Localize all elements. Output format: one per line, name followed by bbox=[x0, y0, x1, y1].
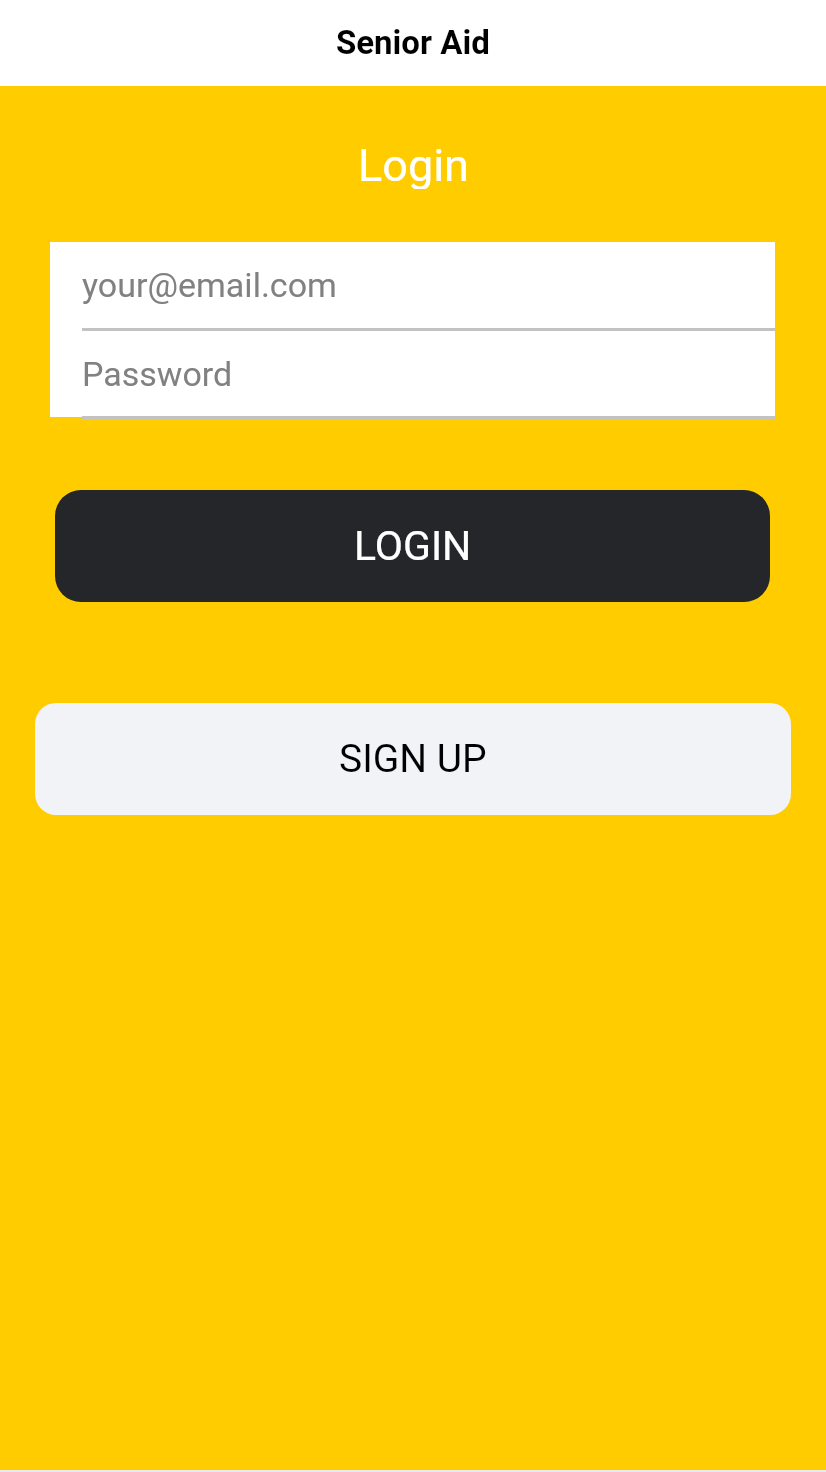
button[interactable]: SIGN UP bbox=[35, 703, 791, 815]
staticText: SIGN UP bbox=[339, 736, 487, 782]
button[interactable]: LOGIN bbox=[55, 490, 770, 602]
staticText: your@email.com bbox=[82, 265, 337, 305]
button[interactable]: Password field bbox=[82, 331, 775, 417]
staticText: Login bbox=[358, 139, 469, 189]
staticText: Senior Aid bbox=[336, 23, 490, 62]
staticText: LOGIN bbox=[354, 522, 472, 570]
staticText: Password bbox=[82, 354, 233, 394]
button[interactable]: Email address field bbox=[82, 242, 775, 328]
